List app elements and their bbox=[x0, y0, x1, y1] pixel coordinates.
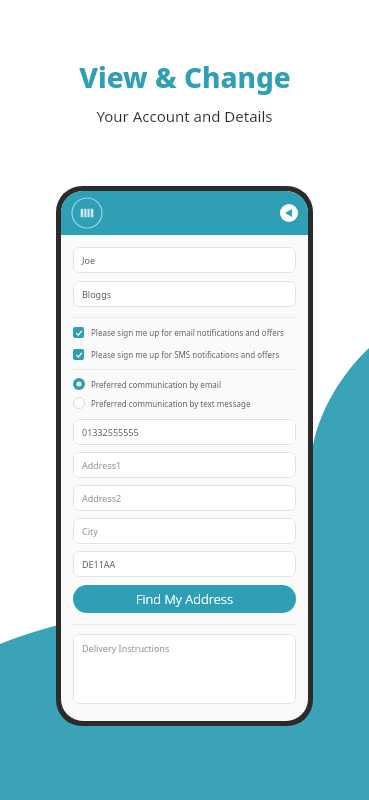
staticText: Preferred communication by text message bbox=[91, 398, 251, 409]
button[interactable]: Address1 bbox=[73, 452, 296, 478]
button[interactable]: 01332555555 bbox=[73, 419, 296, 445]
button[interactable]: Back bbox=[280, 204, 298, 222]
button[interactable]: Preferred communication by text message bbox=[73, 397, 296, 409]
staticText: Find My Address bbox=[136, 590, 233, 608]
button[interactable]: Bloggs bbox=[73, 281, 296, 307]
staticText: View & Change bbox=[79, 58, 291, 96]
button[interactable]: Brand logo bbox=[71, 197, 103, 229]
staticText: Preferred communication by email bbox=[91, 379, 221, 390]
button[interactable]: City bbox=[73, 518, 296, 544]
button[interactable]: Please sign me up for email notification… bbox=[73, 327, 296, 338]
staticText: Your Account and Details bbox=[96, 106, 273, 126]
staticText: Address1 bbox=[82, 459, 122, 471]
button[interactable]: DE11AA bbox=[73, 551, 296, 577]
button[interactable]: Joe bbox=[73, 247, 296, 273]
button[interactable]: Address2 bbox=[73, 485, 296, 511]
staticText: Delivery Instructions bbox=[82, 642, 170, 654]
staticText: Bloggs bbox=[82, 288, 111, 300]
staticText: Address2 bbox=[82, 492, 122, 504]
button[interactable]: Find My Address bbox=[73, 585, 296, 613]
staticText: City bbox=[82, 525, 98, 537]
staticText: Please sign me up for SMS notifications … bbox=[91, 349, 280, 360]
staticText: 01332555555 bbox=[82, 426, 139, 438]
staticText: Joe bbox=[82, 254, 95, 266]
staticText: Please sign me up for email notification… bbox=[91, 327, 284, 338]
button[interactable]: Preferred communication by email bbox=[73, 378, 296, 390]
button[interactable]: Please sign me up for SMS notifications … bbox=[73, 349, 296, 360]
staticText: DE11AA bbox=[82, 558, 116, 570]
button[interactable]: Delivery Instructions bbox=[73, 634, 296, 704]
